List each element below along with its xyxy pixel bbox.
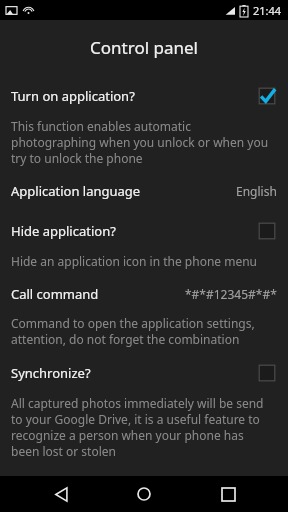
other: Unchecked	[257, 221, 277, 241]
staticText: Application language	[11, 182, 236, 200]
other: Checked	[257, 86, 277, 106]
staticText: Command to open the application settings…	[11, 315, 274, 347]
button[interactable]: Recent apps	[205, 476, 251, 512]
button[interactable]: Hide application?	[0, 216, 288, 246]
staticText: All captured photos immediately will be …	[11, 395, 274, 459]
staticText: 21:44	[253, 3, 282, 18]
staticText: This function enables automatic photogra…	[11, 118, 274, 166]
staticText: Hide application?	[11, 222, 257, 240]
staticText: Hide an application icon in the phone me…	[11, 253, 274, 269]
button[interactable]: Synchronize?	[0, 358, 288, 388]
button[interactable]: Turn on application?	[0, 81, 288, 111]
button[interactable]: Home	[121, 476, 167, 512]
staticText: Turn on application?	[11, 87, 257, 105]
staticText: Control panel	[0, 36, 288, 59]
staticText: Call command	[11, 285, 185, 303]
button[interactable]: Back	[38, 476, 84, 512]
staticText: English	[236, 183, 277, 199]
staticText: *#*#12345#*#*	[185, 286, 277, 302]
button[interactable]: Call command	[0, 280, 288, 308]
other: Unchecked	[257, 363, 277, 383]
staticText: Synchronize?	[11, 364, 257, 382]
button[interactable]: Application language	[0, 177, 288, 205]
